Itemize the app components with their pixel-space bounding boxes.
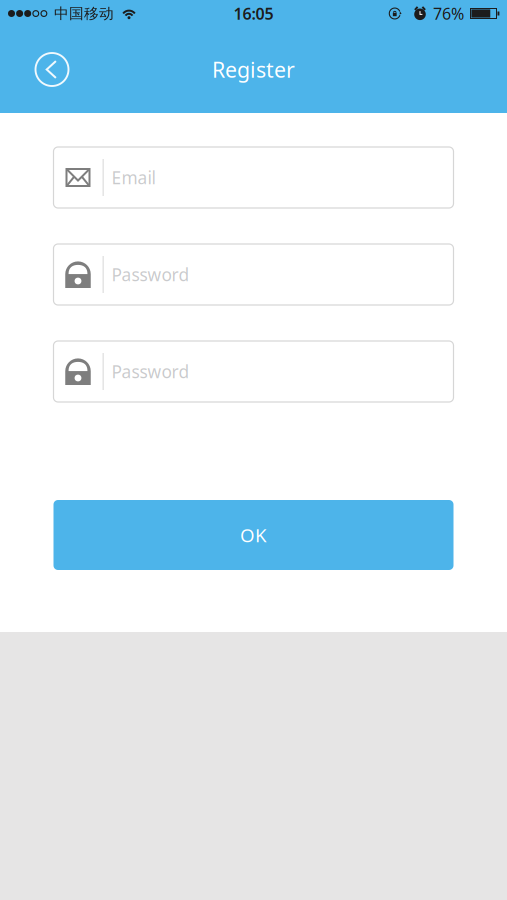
button[interactable]: Password xyxy=(53,244,453,305)
staticText: Password xyxy=(111,360,189,383)
staticText: 16:05 xyxy=(233,3,273,24)
staticText: Email xyxy=(111,166,155,189)
staticText: Register xyxy=(212,55,295,84)
staticText: 76% xyxy=(433,3,464,24)
staticText: 中国移动 xyxy=(54,4,114,22)
staticText: OK xyxy=(240,523,267,547)
button[interactable]: Back xyxy=(25,42,79,96)
button[interactable]: OK xyxy=(53,500,453,570)
button[interactable]: Email xyxy=(53,147,453,208)
staticText: Password xyxy=(111,263,189,286)
button[interactable]: Password xyxy=(53,341,453,402)
